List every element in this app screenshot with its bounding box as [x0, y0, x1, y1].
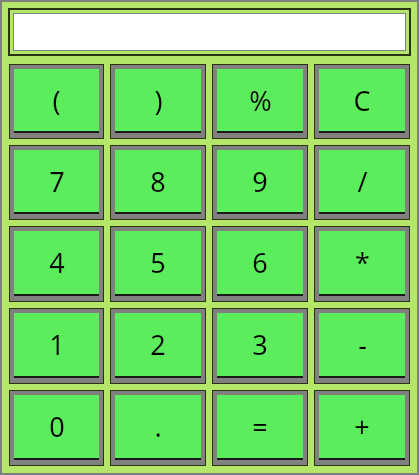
button[interactable]: %: [209, 61, 311, 142]
staticText: C: [353, 82, 371, 119]
button[interactable]: 9: [209, 142, 311, 223]
button[interactable]: 7: [6, 142, 107, 223]
staticText: +: [354, 408, 370, 445]
staticText: 8: [150, 163, 166, 200]
staticText: *: [355, 244, 370, 281]
staticText: 5: [150, 244, 166, 281]
staticText: -: [358, 326, 367, 363]
button[interactable]: 1: [6, 305, 107, 387]
staticText: .: [154, 408, 162, 445]
button[interactable]: +: [311, 387, 413, 469]
button[interactable]: /: [311, 142, 413, 223]
button[interactable]: =: [209, 387, 311, 469]
staticText: 3: [252, 326, 268, 363]
button[interactable]: 6: [209, 223, 311, 305]
button[interactable]: .: [107, 387, 209, 469]
staticText: (: [52, 82, 61, 119]
button[interactable]: 2: [107, 305, 209, 387]
button[interactable]: -: [311, 305, 413, 387]
button[interactable]: C: [311, 61, 413, 142]
button[interactable]: 5: [107, 223, 209, 305]
staticText: 4: [49, 244, 65, 281]
button[interactable]: 8: [107, 142, 209, 223]
staticText: =: [252, 408, 268, 445]
button[interactable]: 0: [6, 387, 107, 469]
staticText: 2: [150, 326, 166, 363]
button[interactable]: (: [6, 61, 107, 142]
staticText: 1: [49, 326, 65, 363]
staticText: 9: [252, 163, 268, 200]
button[interactable]: 4: [6, 223, 107, 305]
staticText: 0: [49, 408, 65, 445]
staticText: ): [154, 82, 163, 119]
staticText: 6: [252, 244, 268, 281]
button[interactable]: *: [311, 223, 413, 305]
staticText: 7: [49, 163, 65, 200]
button[interactable]: ): [107, 61, 209, 142]
staticText: %: [249, 82, 272, 119]
button[interactable]: 3: [209, 305, 311, 387]
staticText: /: [357, 163, 368, 200]
